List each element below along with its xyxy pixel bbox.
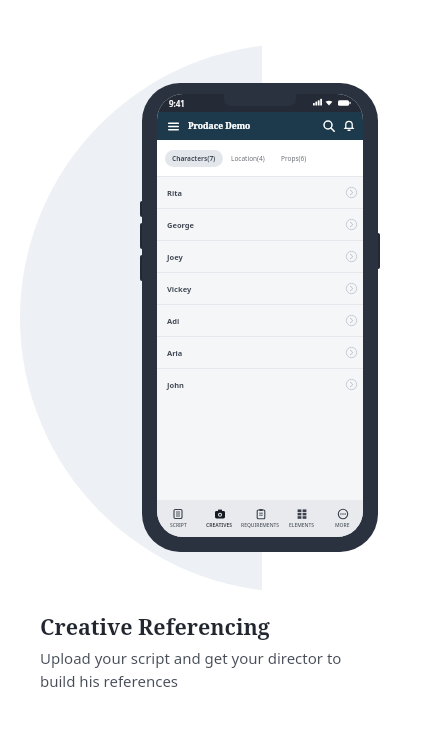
staticText: MORE (335, 522, 350, 529)
staticText: Upload your script and get your director… (40, 648, 342, 691)
button[interactable]: Aria (157, 336, 363, 368)
button[interactable]: Adi (157, 304, 363, 336)
staticText: Vickey (167, 284, 192, 294)
staticText: Prodace Demo (188, 120, 251, 132)
button[interactable] (343, 120, 355, 132)
staticText: Characters(7) (172, 154, 216, 163)
button[interactable]: SCRIPT (157, 500, 199, 537)
button[interactable]: MORE (322, 500, 363, 537)
staticText: Aria (167, 348, 183, 358)
button[interactable]: Characters(7) (165, 150, 223, 167)
staticText: ELEMENTS (289, 522, 315, 529)
button[interactable]: Props(6) (277, 150, 311, 167)
staticText: Adi (167, 316, 180, 326)
staticText: CREATIVES (206, 522, 233, 529)
staticText: Location(4) (231, 154, 265, 163)
button[interactable]: Location(4) (227, 150, 269, 167)
staticText: George (167, 220, 195, 230)
button[interactable]: Joey (157, 240, 363, 272)
staticText: Joey (167, 252, 183, 262)
staticText: SCRIPT (170, 522, 187, 529)
button[interactable]: George (157, 208, 363, 240)
button[interactable]: John (157, 368, 363, 400)
button[interactable]: Vickey (157, 272, 363, 304)
button[interactable]: ELEMENTS (281, 500, 322, 537)
staticText: 9:41 (169, 98, 185, 109)
button[interactable]: CREATIVES (199, 500, 240, 537)
button[interactable] (323, 120, 335, 132)
staticText: REQUIREMENTS (241, 522, 280, 529)
button[interactable]: Rita (157, 176, 363, 208)
staticText: Props(6) (281, 154, 307, 163)
staticText: John (167, 380, 184, 390)
staticText: Creative Referencing (40, 612, 270, 641)
button[interactable] (168, 122, 179, 131)
staticText: Rita (167, 188, 182, 198)
button[interactable]: REQUIREMENTS (240, 500, 281, 537)
